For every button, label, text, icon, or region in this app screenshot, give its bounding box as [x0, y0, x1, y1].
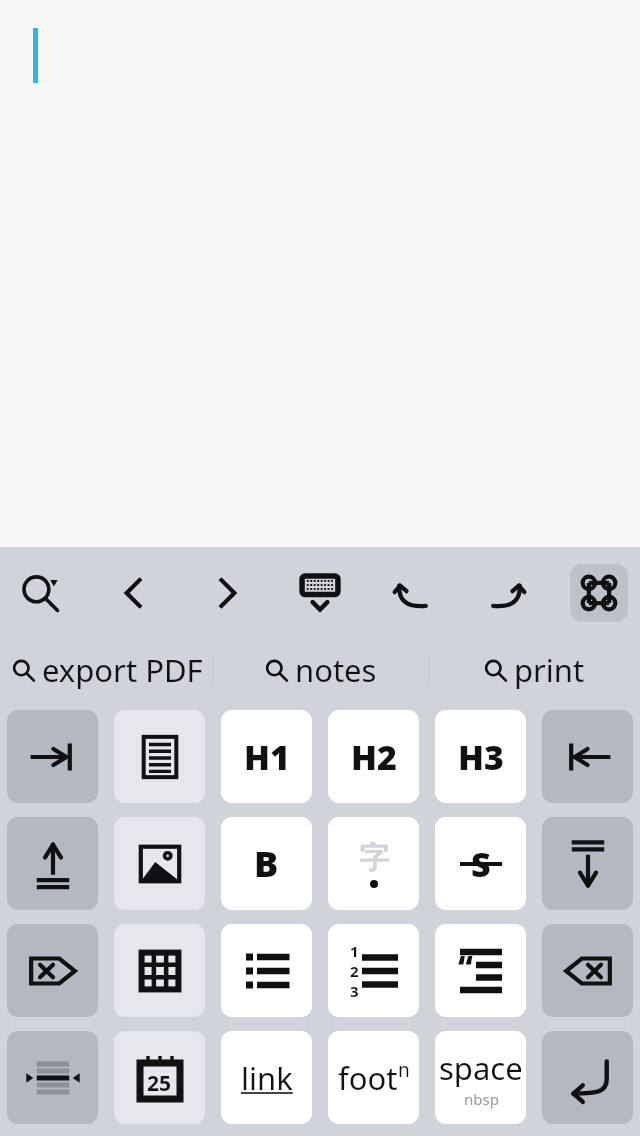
- staticText: H1: [244, 734, 290, 780]
- button[interactable]: Backspace: [542, 924, 633, 1017]
- button[interactable]: Ruby text: [328, 817, 419, 910]
- button[interactable]: Move to top: [7, 817, 98, 910]
- staticText: print: [514, 649, 585, 691]
- button[interactable]: Previous: [105, 564, 163, 622]
- button[interactable]: Select line: [7, 1031, 98, 1124]
- button[interactable]: space nbsp: [435, 1031, 526, 1124]
- staticText: S: [471, 841, 491, 887]
- button[interactable]: Undo: [384, 564, 442, 622]
- staticText: B: [254, 839, 279, 888]
- button[interactable]: B: [221, 817, 312, 910]
- staticText: nbsp: [464, 1089, 499, 1109]
- staticText: “: [458, 946, 473, 987]
- button[interactable]: Next: [198, 564, 256, 622]
- button[interactable]: Insert image: [114, 817, 205, 910]
- button[interactable]: Outdent: [542, 710, 633, 803]
- button[interactable]: Document: [114, 710, 205, 803]
- staticText: 25: [147, 1069, 172, 1098]
- button[interactable]: link: [221, 1031, 312, 1124]
- button[interactable]: Return: [542, 1031, 633, 1124]
- button[interactable]: footnote: [328, 1031, 419, 1124]
- button[interactable]: H2: [328, 710, 419, 803]
- staticText: 3: [350, 981, 359, 1001]
- button[interactable]: Block quote: [435, 924, 526, 1017]
- staticText: notes: [295, 649, 377, 691]
- button[interactable]: H1: [221, 710, 312, 803]
- button[interactable]: Indent: [7, 710, 98, 803]
- staticText: space: [439, 1047, 523, 1089]
- staticText: foot: [338, 1057, 398, 1099]
- staticText: 2: [350, 961, 359, 981]
- button[interactable]: Insert date: [114, 1031, 205, 1124]
- staticText: H3: [458, 734, 504, 780]
- staticText: 字: [359, 839, 389, 877]
- button[interactable]: Insert table: [114, 924, 205, 1017]
- staticText: n: [398, 1057, 410, 1083]
- button[interactable]: Command: [570, 564, 628, 622]
- button[interactable]: print: [427, 639, 640, 701]
- button[interactable]: Numbered list: [328, 924, 419, 1017]
- staticText: 1: [350, 941, 359, 961]
- button[interactable]: H3: [435, 710, 526, 803]
- staticText: link: [241, 1057, 293, 1099]
- button[interactable]: Move to bottom: [542, 817, 633, 910]
- button[interactable]: notes: [214, 639, 427, 701]
- staticText: export PDF: [42, 649, 203, 691]
- button[interactable]: Bulleted list: [221, 924, 312, 1017]
- button[interactable]: Hide keyboard: [291, 564, 349, 622]
- staticText: H2: [351, 734, 397, 780]
- button[interactable]: Delete forward: [7, 924, 98, 1017]
- button[interactable]: Search: [12, 564, 70, 622]
- button[interactable]: export PDF: [0, 639, 214, 701]
- button[interactable]: Redo: [477, 564, 535, 622]
- button[interactable]: Strikethrough: [435, 817, 526, 910]
